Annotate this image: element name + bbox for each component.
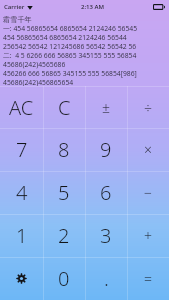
staticText: 一: 454 56865654 6865654 2124246 56545: [3, 24, 138, 33]
staticText: C: [58, 94, 71, 121]
staticText: +: [144, 226, 152, 245]
staticText: 0: [58, 265, 70, 292]
staticText: 7: [16, 136, 28, 163]
staticText: 454 56865654 6865654 2124246 56544: [3, 33, 127, 42]
button[interactable]: ×: [127, 128, 169, 171]
staticText: 9: [100, 136, 112, 163]
staticText: 456266 666 56865 345155 555 56854[986]: [3, 69, 137, 78]
button[interactable]: 0: [43, 257, 85, 300]
staticText: 1: [16, 222, 28, 249]
button[interactable]: Settings: [0, 257, 43, 300]
staticText: 霜雪千年: [3, 15, 32, 24]
button[interactable]: ±: [85, 86, 127, 128]
staticText: −: [144, 183, 152, 202]
staticText: 4: [16, 179, 28, 206]
button[interactable]: 7: [0, 128, 43, 171]
staticText: 6: [100, 179, 112, 206]
button[interactable]: AC: [0, 86, 43, 128]
button[interactable]: =: [127, 257, 169, 300]
staticText: 二: 4 5 6266 666 56865 345155 555 56854: [3, 51, 137, 60]
staticText: 5: [58, 179, 70, 206]
staticText: 2: [58, 222, 70, 249]
staticText: ÷: [144, 98, 152, 117]
staticText: 3: [100, 222, 112, 249]
button[interactable]: 3: [85, 214, 127, 257]
button[interactable]: 6: [85, 171, 127, 214]
button[interactable]: 2: [43, 214, 85, 257]
staticText: 8: [58, 136, 70, 163]
staticText: AC: [9, 94, 34, 121]
staticText: 45686(242)4565686: [3, 60, 66, 69]
staticText: 45686(242)456865654: [3, 78, 74, 86]
button[interactable]: 4: [0, 171, 43, 214]
button[interactable]: ÷: [127, 86, 169, 128]
button[interactable]: 1: [0, 214, 43, 257]
button[interactable]: C: [43, 86, 85, 128]
staticText: Carrier: [4, 3, 25, 11]
button[interactable]: 9: [85, 128, 127, 171]
staticText: 256542 56542 121245686 56542 56542 56: [3, 42, 137, 51]
staticText: ×: [144, 140, 152, 159]
staticText: .: [104, 265, 109, 292]
staticText: =: [144, 269, 152, 288]
button[interactable]: +: [127, 214, 169, 257]
button[interactable]: .: [85, 257, 127, 300]
button[interactable]: 8: [43, 128, 85, 171]
button[interactable]: 5: [43, 171, 85, 214]
button[interactable]: −: [127, 171, 169, 214]
staticText: ±: [102, 98, 110, 117]
staticText: 2:13 AM: [81, 3, 105, 11]
